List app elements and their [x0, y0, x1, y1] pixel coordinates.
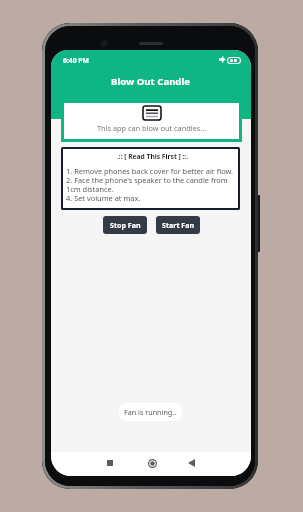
staticText: Blow Out Candle [111, 75, 191, 88]
staticText: 1. Remove phones back cover for better a… [66, 166, 234, 203]
staticText: Stop Fan [110, 220, 141, 230]
staticText: This app can blow out candles... [97, 123, 207, 133]
staticText: .:: [ Read This First ] ::. [66, 152, 239, 161]
button[interactable]: Stop Fan [103, 216, 147, 234]
button[interactable]: This app can blow out candles... [61, 100, 242, 142]
button[interactable]: Home [143, 454, 161, 472]
staticText: 6:40 PM [63, 56, 89, 65]
button[interactable]: Start Fan [156, 216, 200, 234]
staticText: Start Fan [162, 220, 195, 230]
button[interactable]: Back [182, 454, 200, 472]
button[interactable]: Recents [101, 454, 119, 472]
staticText: Fan is running.. [124, 407, 177, 417]
